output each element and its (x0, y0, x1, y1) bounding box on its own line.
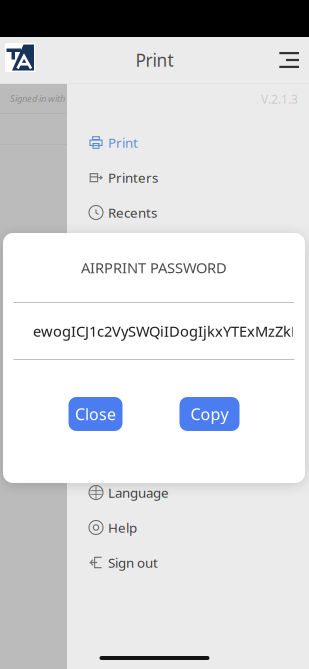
button[interactable]: Cloud (67, 265, 309, 300)
button[interactable]: Recents (67, 195, 309, 230)
button[interactable]: Menu (265, 37, 309, 83)
button[interactable]: Help (67, 510, 309, 545)
staticText: ewogICJ1c2VySWQiIDogIjkxYTExMzZkLTNiN2Y (33, 321, 309, 341)
button[interactable]: Close (68, 397, 122, 431)
button[interactable]: About (67, 405, 309, 440)
staticText: Help (108, 519, 137, 536)
staticText: Sign out (108, 554, 158, 571)
button[interactable]: Sign out (67, 545, 309, 580)
staticText: Close (75, 403, 116, 425)
staticText: V.2.1.3 (261, 91, 298, 107)
staticText: About (108, 414, 146, 431)
staticText: Language (108, 484, 169, 501)
button[interactable]: Language (67, 475, 309, 510)
button[interactable]: Printers (67, 160, 309, 195)
button[interactable]: Copy (179, 397, 239, 431)
staticText: Settings (108, 344, 158, 361)
staticText: Print (135, 48, 173, 71)
staticText: Signed in with (10, 92, 65, 105)
button[interactable]: Privacy (67, 440, 309, 475)
staticText: AIRPRINT PASSWORD (81, 258, 227, 277)
staticText: Printers (108, 169, 158, 186)
button[interactable]: Rate us (67, 370, 309, 405)
button[interactable]: Settings (67, 335, 309, 370)
staticText: Print (108, 134, 138, 151)
staticText: Recents (108, 204, 157, 221)
staticText: Copy (190, 403, 228, 425)
button[interactable]: Print (67, 125, 309, 160)
button[interactable]: Documents (67, 230, 309, 265)
button[interactable]: TA home (5, 43, 35, 72)
button[interactable]: Account (67, 300, 309, 335)
